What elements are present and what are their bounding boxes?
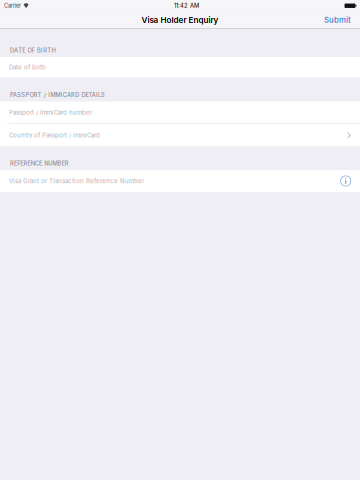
staticText: Visa Grant or Transaction Reference Numb…: [9, 177, 144, 185]
staticText: Date of birth: [9, 64, 46, 71]
staticText: Visa Holder Enquiry: [141, 15, 218, 25]
staticText: PASSPORT / IMMICARD DETAILS: [10, 91, 105, 98]
button[interactable]: Country of Passport / ImmiCard: [0, 124, 360, 146]
staticText: Passport / ImmiCard number: [9, 109, 92, 116]
staticText: Country of Passport / ImmiCard: [9, 132, 100, 139]
button[interactable]: Submit: [315, 11, 360, 28]
staticText: Carrier: [4, 2, 21, 9]
staticText: 11:42 AM: [174, 2, 199, 9]
button[interactable]: Passport / ImmiCard number: [0, 101, 360, 123]
staticText: DATE OF BIRTH: [10, 47, 55, 54]
button[interactable]: Date of birth: [0, 57, 360, 77]
button[interactable]: Visa Grant or Transaction Reference Numb…: [0, 170, 360, 192]
staticText: Submit: [324, 15, 351, 25]
staticText: REFERENCE NUMBER: [10, 160, 69, 167]
